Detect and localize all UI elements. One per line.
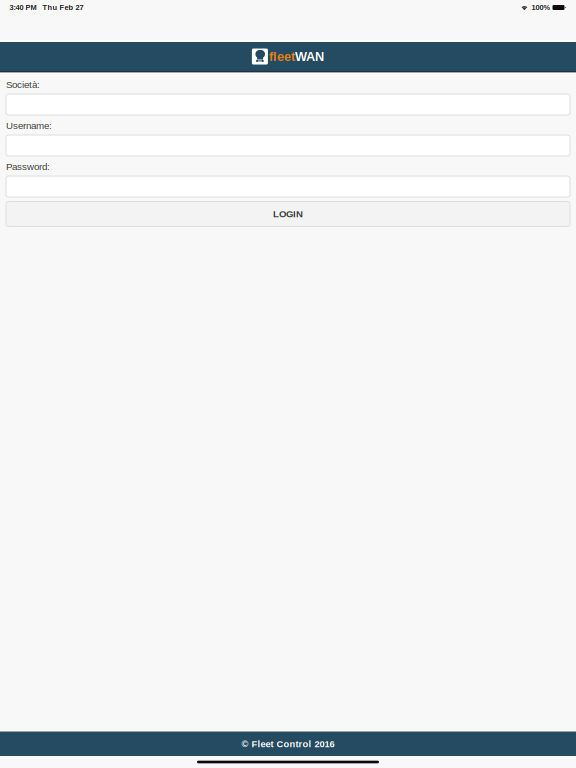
staticText: fleet: [269, 49, 295, 64]
button[interactable]: LOGIN: [6, 201, 570, 226]
staticText: LOGIN: [273, 209, 303, 219]
staticText: Username:: [6, 120, 52, 131]
staticText: WAN: [295, 49, 324, 64]
staticText: 3:40 PM: [9, 3, 36, 12]
staticText: © Fleet Control 2016: [241, 739, 334, 749]
staticText: 100%: [531, 3, 550, 12]
staticText: Thu Feb 27: [42, 3, 83, 12]
staticText: Società:: [6, 79, 40, 90]
staticText: Password:: [6, 161, 50, 172]
